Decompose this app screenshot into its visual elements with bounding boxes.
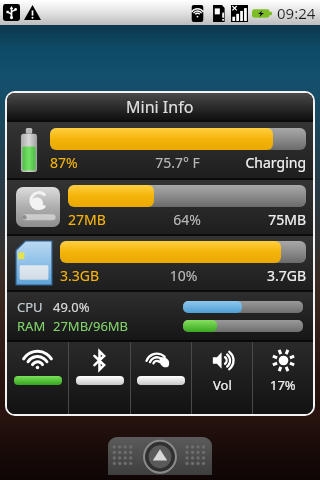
staticText: 17%	[270, 376, 296, 394]
staticText: Mini Info	[126, 96, 194, 118]
button[interactable]: GPS	[131, 342, 191, 414]
button[interactable]: Brightness	[253, 342, 313, 414]
staticText: 87%	[50, 153, 132, 172]
staticText: Vol	[213, 376, 232, 394]
button[interactable]: Volume	[192, 342, 252, 414]
staticText: 27MB/96MB	[53, 317, 183, 335]
button[interactable]: Bluetooth	[69, 342, 130, 414]
button[interactable]: CPU	[7, 292, 313, 340]
button[interactable]: 87%	[7, 122, 313, 178]
staticText: 75MB	[229, 210, 306, 229]
staticText: RAM	[17, 317, 53, 335]
staticText: 10%	[140, 266, 227, 285]
button[interactable]: All apps	[108, 437, 212, 475]
button[interactable]: 3.3GB	[7, 236, 313, 290]
staticText: 75.7° F	[132, 153, 223, 172]
staticText: CPU	[17, 298, 53, 316]
staticText: 09:24	[277, 3, 316, 23]
staticText: 64%	[145, 210, 229, 229]
staticText: 3.3GB	[60, 266, 140, 285]
staticText: 49.0%	[53, 298, 183, 316]
button[interactable]: Wi-Fi	[7, 342, 68, 414]
button[interactable]: 27MB	[7, 180, 313, 234]
staticText: 3.7GB	[227, 266, 306, 285]
staticText: Charging	[223, 153, 306, 172]
staticText: 27MB	[68, 210, 145, 229]
